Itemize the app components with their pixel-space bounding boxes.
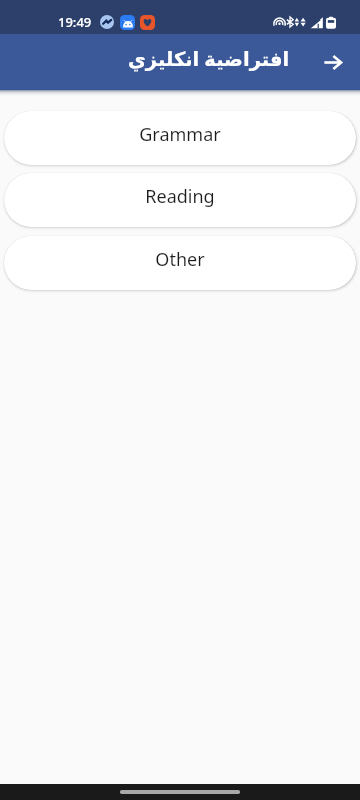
button[interactable]: Next [317, 46, 349, 78]
staticText: افتراضية انكليزي [128, 45, 290, 72]
staticText: 19:49 [58, 13, 92, 31]
staticText: Other [155, 247, 205, 272]
button[interactable]: Other [4, 236, 356, 290]
staticText: Grammar [139, 122, 221, 147]
button[interactable]: Reading [4, 173, 356, 227]
staticText: Reading [145, 184, 215, 209]
button[interactable]: Grammar [4, 111, 356, 165]
